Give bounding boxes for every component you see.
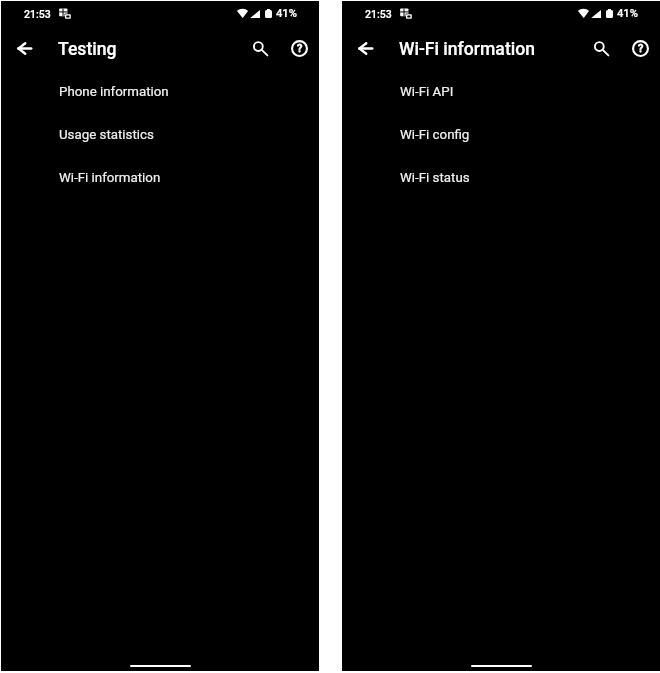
button[interactable]: Back	[8, 33, 40, 65]
staticText: Wi-Fi information	[399, 39, 536, 60]
staticText: Phone information	[59, 84, 169, 100]
staticText: Wi-Fi information	[59, 170, 161, 186]
button[interactable]: Usage statistics	[1, 113, 319, 156]
button[interactable]: Wi-Fi information	[1, 156, 319, 199]
staticText: Wi-Fi status	[400, 170, 470, 186]
button[interactable]: Help	[626, 34, 654, 62]
staticText: 21:53	[24, 8, 51, 20]
staticText: 41%	[276, 7, 297, 20]
staticText: Wi-Fi API	[400, 84, 454, 100]
staticText: Testing	[58, 39, 117, 60]
staticText: Usage statistics	[59, 127, 154, 143]
staticText: ?	[297, 42, 303, 55]
button[interactable]: Search	[587, 34, 615, 62]
button[interactable]: Phone information	[1, 70, 319, 113]
staticText: 21:53	[365, 8, 392, 20]
button[interactable]: Help	[285, 34, 313, 62]
button[interactable]: Search	[246, 34, 274, 62]
button[interactable]: Wi-Fi API	[342, 70, 660, 113]
button[interactable]: Back	[349, 33, 381, 65]
staticText: Wi-Fi config	[400, 127, 470, 143]
button[interactable]: Wi-Fi status	[342, 156, 660, 199]
staticText: 41%	[617, 7, 638, 20]
button[interactable]: Wi-Fi config	[342, 113, 660, 156]
staticText: ?	[638, 42, 644, 55]
